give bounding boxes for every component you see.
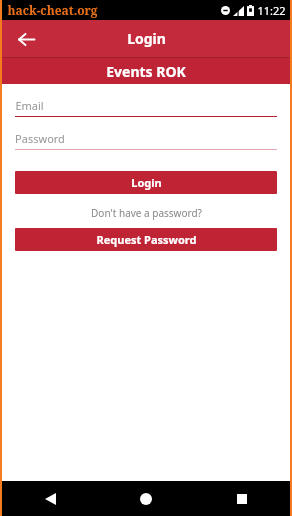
staticText: Email xyxy=(15,98,44,113)
staticText: Login xyxy=(127,29,166,48)
button[interactable]: Email xyxy=(15,98,277,117)
button[interactable]: Recent apps xyxy=(194,481,290,516)
staticText: Password xyxy=(15,131,65,146)
staticText: Login xyxy=(131,175,162,190)
staticText: Events ROK xyxy=(106,62,186,81)
button[interactable]: Home xyxy=(98,481,194,516)
staticText: hack-cheat.org xyxy=(7,2,98,18)
staticText: Request Password xyxy=(96,232,197,247)
button[interactable]: Password xyxy=(15,131,277,150)
staticText: 11:22 xyxy=(257,3,286,18)
button[interactable]: Back xyxy=(11,24,41,54)
button[interactable]: Request Password xyxy=(15,228,277,251)
button[interactable]: Don't have a password? xyxy=(91,206,202,220)
button[interactable]: Login xyxy=(15,171,277,194)
button[interactable]: Back xyxy=(2,481,98,516)
